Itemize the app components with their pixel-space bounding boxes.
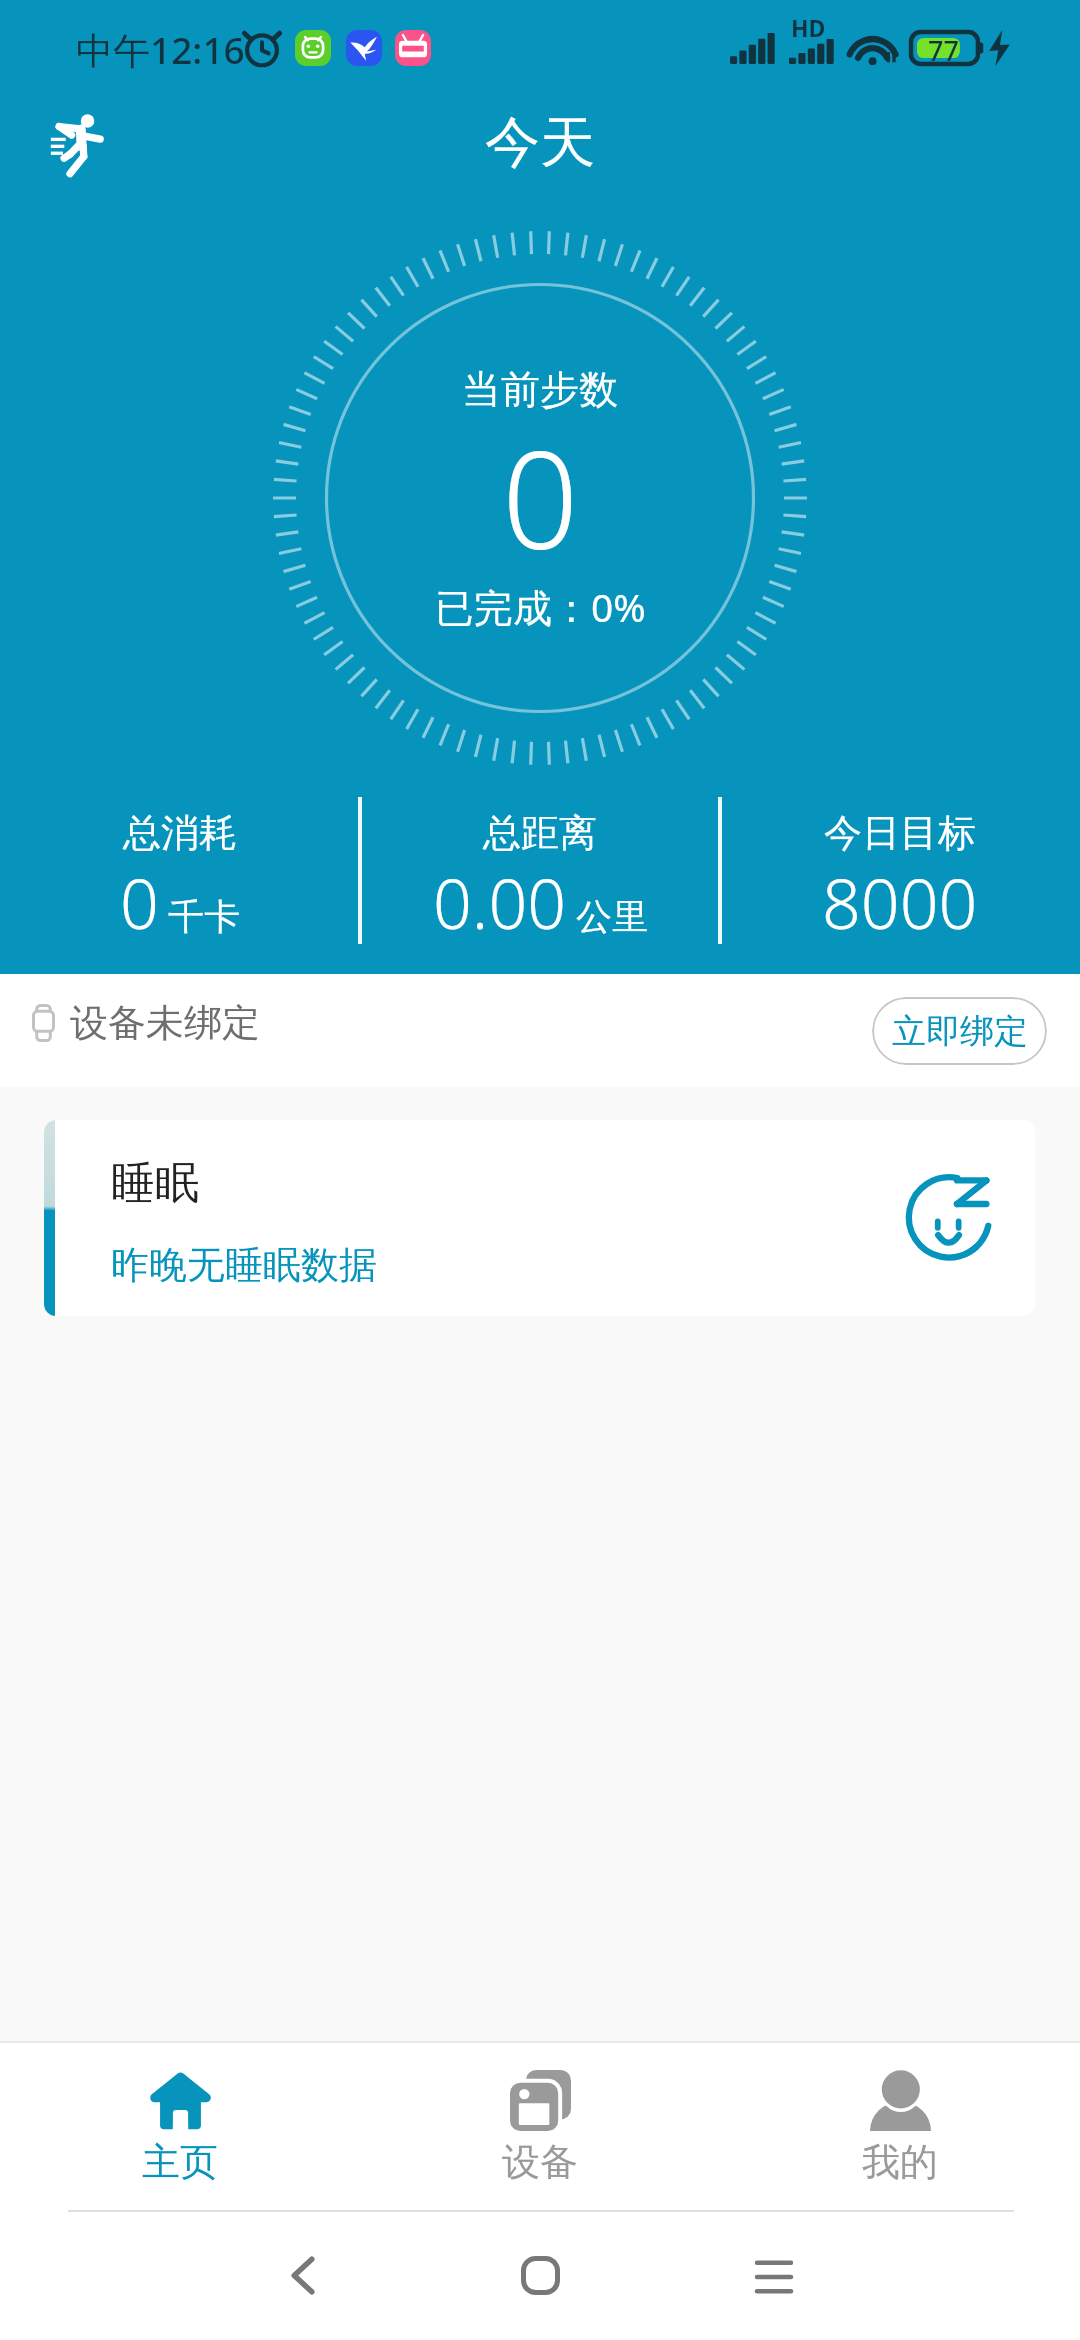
button[interactable]: 立即绑定	[872, 997, 1047, 1065]
staticText: 已完成：0%	[435, 580, 646, 633]
button[interactable]: 总距离	[360, 790, 720, 950]
button[interactable]: 当前步数	[273, 231, 807, 765]
button[interactable]: 设备	[360, 2043, 720, 2210]
button[interactable]: Back	[255, 2227, 351, 2323]
staticText: 今天	[485, 108, 595, 177]
staticText: 睡眠	[111, 1156, 199, 1211]
staticText: 77	[928, 32, 959, 64]
button[interactable]: 运动记录	[28, 96, 126, 191]
button[interactable]: Recent apps	[726, 2229, 822, 2325]
button[interactable]: Home	[492, 2227, 588, 2323]
staticText: 当前步数	[462, 365, 618, 414]
button[interactable]: 主页	[0, 2043, 360, 2210]
staticText: 中午12:16	[76, 24, 245, 75]
staticText: 0	[502, 406, 579, 589]
staticText: 0	[120, 856, 159, 949]
staticText: 我的	[862, 2138, 938, 2186]
staticText: 总距离	[483, 809, 597, 857]
staticText: 设备	[502, 2138, 578, 2186]
staticText: 8000	[822, 856, 978, 949]
staticText: 主页	[142, 2138, 218, 2186]
staticText: 今日目标	[824, 809, 976, 857]
staticText: 昨晚无睡眠数据	[111, 1241, 377, 1289]
button[interactable]: 睡眠	[44, 1120, 1035, 1316]
staticText: 立即绑定	[892, 1010, 1028, 1053]
staticText: 千卡	[168, 894, 240, 939]
staticText: 总消耗	[123, 809, 237, 857]
button[interactable]: 今日目标	[720, 790, 1080, 950]
staticText: 公里	[576, 894, 648, 939]
button[interactable]: 总消耗	[0, 790, 360, 950]
button[interactable]: 我的	[720, 2043, 1080, 2210]
staticText: 0.00	[433, 856, 567, 949]
staticText: HD	[791, 12, 826, 43]
staticText: 设备未绑定	[70, 999, 260, 1047]
